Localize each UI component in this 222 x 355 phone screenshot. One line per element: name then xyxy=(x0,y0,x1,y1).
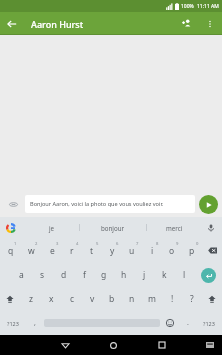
staticText: r xyxy=(70,245,74,257)
button[interactable]: Hide keyboard xyxy=(201,336,219,354)
button[interactable]: merci xyxy=(147,217,202,238)
staticText: , xyxy=(34,318,36,328)
button[interactable]: Bonjour Aaron, voici la photo que vous v… xyxy=(25,195,195,213)
button[interactable]: Back xyxy=(55,335,75,355)
staticText: z xyxy=(29,293,33,305)
staticText: Aaron Hurst xyxy=(31,18,84,30)
button[interactable]: Recents xyxy=(152,335,172,355)
staticText: q xyxy=(8,245,14,257)
button[interactable]: s xyxy=(32,263,53,287)
button[interactable]: v xyxy=(82,287,102,311)
button[interactable]: Add people xyxy=(176,12,199,35)
button[interactable]: l xyxy=(174,263,194,287)
button[interactable]: t xyxy=(82,238,102,263)
staticText: 1 xyxy=(14,241,17,247)
staticText: 100% xyxy=(181,3,194,10)
button[interactable]: q xyxy=(0,238,21,263)
staticText: merci xyxy=(166,224,183,232)
staticText: 2 xyxy=(35,241,38,247)
button[interactable]: Attach xyxy=(5,196,22,213)
staticText: p xyxy=(189,245,195,257)
button[interactable]: Back xyxy=(0,12,23,35)
staticText: s xyxy=(40,269,45,281)
staticText: k xyxy=(162,269,167,281)
staticText: 4 xyxy=(76,241,79,247)
button[interactable]: e xyxy=(42,238,62,263)
button[interactable]: h xyxy=(114,263,134,287)
button[interactable]: Send xyxy=(199,195,218,214)
staticText: m xyxy=(148,293,156,305)
staticText: bonjour xyxy=(101,224,125,232)
button[interactable]: a xyxy=(11,263,32,287)
button[interactable]: d xyxy=(53,263,74,287)
button[interactable]: ?123 xyxy=(0,311,26,335)
button[interactable]: bonjour xyxy=(80,217,146,238)
button[interactable]: Shift xyxy=(0,287,20,311)
button[interactable]: n xyxy=(122,287,142,311)
button[interactable]: y xyxy=(102,238,122,263)
staticText: n xyxy=(129,293,135,305)
button[interactable]: Emoji xyxy=(160,311,180,335)
button[interactable]: i xyxy=(142,238,162,263)
staticText: 6 xyxy=(116,241,119,247)
staticText: ! xyxy=(171,293,174,305)
staticText: t xyxy=(90,245,94,257)
button[interactable]: More options xyxy=(199,13,220,34)
staticText: 11:11 AM xyxy=(197,3,219,10)
button[interactable]: c xyxy=(62,287,82,311)
button[interactable]: f xyxy=(74,263,94,287)
staticText: 7 xyxy=(136,241,139,247)
staticText: je xyxy=(49,224,55,232)
staticText: o xyxy=(169,245,175,257)
staticText: ?123 xyxy=(203,320,215,327)
staticText: u xyxy=(129,245,135,257)
staticText: 8 xyxy=(156,241,159,247)
staticText: 9 xyxy=(176,241,179,247)
staticText: y xyxy=(110,245,115,257)
button[interactable]: Backspace xyxy=(202,238,222,263)
staticText: 5 xyxy=(96,241,99,247)
button[interactable]: je xyxy=(25,217,79,238)
button[interactable]: g xyxy=(94,263,114,287)
staticText: . xyxy=(187,318,189,328)
button[interactable]: j xyxy=(134,263,154,287)
button[interactable]: Enter xyxy=(194,263,222,287)
staticText: l xyxy=(183,269,186,281)
button[interactable]: ?123 xyxy=(196,311,222,335)
button[interactable]: Google xyxy=(0,217,21,238)
staticText: a xyxy=(19,269,24,281)
button[interactable]: b xyxy=(102,287,122,311)
button[interactable]: u xyxy=(122,238,142,263)
staticText: e xyxy=(50,245,55,257)
staticText: c xyxy=(70,293,75,305)
staticText: 3 xyxy=(56,241,59,247)
staticText: j xyxy=(143,269,146,281)
button[interactable]: p xyxy=(182,238,202,263)
button[interactable]: Shift right xyxy=(202,287,222,311)
staticText: ?123 xyxy=(7,320,19,327)
staticText: ? xyxy=(190,293,194,305)
staticText: Bonjour Aaron, voici la photo que vous v… xyxy=(30,200,164,208)
staticText: b xyxy=(109,293,115,305)
button[interactable]: k xyxy=(154,263,174,287)
staticText: d xyxy=(61,269,67,281)
button[interactable]: ? xyxy=(182,287,202,311)
staticText: f xyxy=(83,269,86,281)
staticText: v xyxy=(90,293,95,305)
button[interactable]: z xyxy=(20,287,41,311)
staticText: 0 xyxy=(196,241,199,247)
button[interactable]: Voice input xyxy=(202,219,220,237)
button[interactable]: x xyxy=(41,287,62,311)
staticText: i xyxy=(151,245,154,257)
button[interactable]: o xyxy=(162,238,182,263)
staticText: g xyxy=(101,269,107,281)
button[interactable]: m xyxy=(142,287,162,311)
button[interactable]: , xyxy=(26,311,44,335)
button[interactable]: ! xyxy=(162,287,182,311)
button[interactable]: w xyxy=(21,238,42,263)
button[interactable]: Home xyxy=(103,335,123,355)
button[interactable]: r xyxy=(62,238,82,263)
staticText: w xyxy=(28,245,35,257)
